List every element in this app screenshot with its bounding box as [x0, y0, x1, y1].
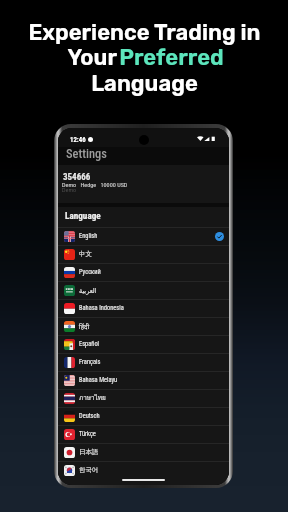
staticText: Experience Trading in: [28, 19, 261, 45]
button[interactable]: Deutsch: [58, 407, 229, 425]
staticText: Language: [65, 210, 101, 221]
staticText: Türkçe: [79, 430, 96, 438]
staticText: Русский: [79, 268, 101, 276]
staticText: 12:46: [70, 136, 86, 144]
staticText: Demo Hedge 10000 USD: [62, 181, 128, 188]
staticText: Español: [79, 340, 100, 348]
staticText: 中文: [79, 250, 92, 258]
staticText: 한국어: [79, 466, 99, 474]
button[interactable]: हिंदी: [58, 317, 229, 335]
staticText: Bahasa Indonesia: [79, 304, 124, 312]
staticText: Français: [79, 358, 101, 366]
button[interactable]: Bahasa Indonesia: [58, 299, 229, 317]
button[interactable]: 中文: [58, 245, 229, 263]
button[interactable]: 한국어: [58, 461, 229, 479]
staticText: Your: [65, 44, 119, 70]
staticText: العربية: [79, 287, 97, 294]
staticText: 354666: [63, 172, 91, 183]
staticText: Deutsch: [79, 412, 100, 420]
staticText: ภาษาไทย: [79, 393, 106, 403]
button[interactable]: English: [58, 227, 229, 245]
staticText: Preferred: [119, 44, 224, 70]
staticText: Settings: [66, 146, 107, 161]
button[interactable]: ภาษาไทย: [58, 389, 229, 407]
staticText: Language: [91, 70, 198, 96]
staticText: 日本語: [79, 448, 99, 456]
button[interactable]: العربية: [58, 281, 229, 299]
staticText: English: [79, 232, 98, 240]
staticText: Demo: [62, 186, 77, 193]
staticText: हिंदी: [79, 322, 90, 331]
button[interactable]: Español: [58, 335, 229, 353]
button[interactable]: Bahasa Melayu: [58, 371, 229, 389]
button[interactable]: Русский: [58, 263, 229, 281]
button[interactable]: Türkçe: [58, 425, 229, 443]
button[interactable]: 日本語: [58, 443, 229, 461]
button[interactable]: Français: [58, 353, 229, 371]
staticText: Bahasa Melayu: [79, 376, 118, 384]
